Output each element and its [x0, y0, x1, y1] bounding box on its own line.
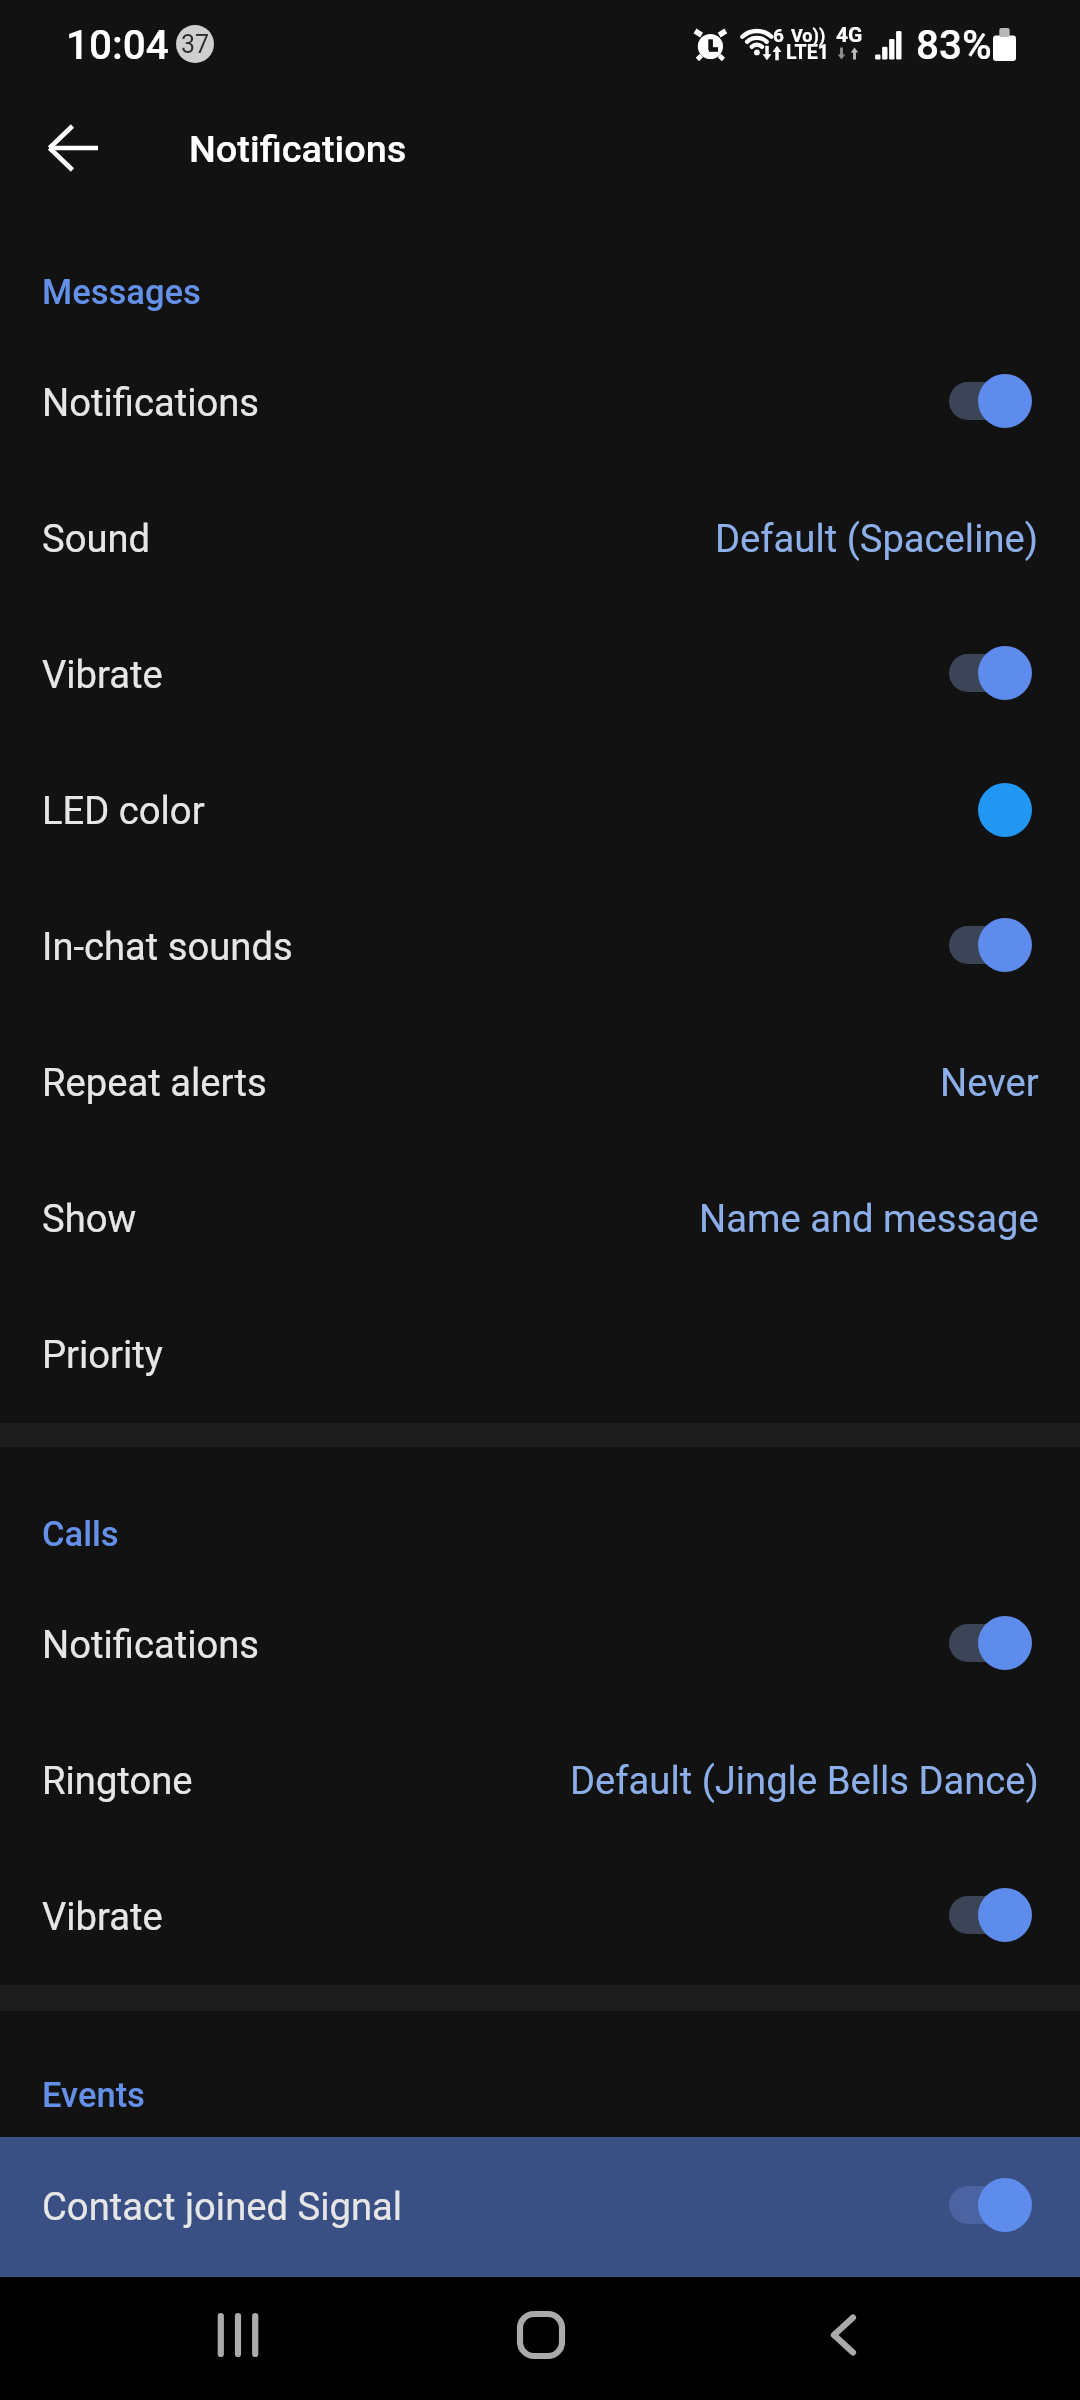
button[interactable]: Vibrate: [0, 1849, 1080, 1985]
staticText: Vibrate: [42, 653, 163, 698]
staticText: Ringtone: [42, 1759, 193, 1804]
staticText: Notifications: [189, 127, 407, 171]
button[interactable]: In-chat sounds: [0, 879, 1080, 1015]
staticText: Notifications: [42, 1623, 260, 1668]
staticText: Notifications: [42, 381, 260, 426]
button[interactable]: Contact joined Signal: [0, 2137, 1080, 2277]
staticText: LTE1: [786, 41, 829, 64]
staticText: Contact joined Signal: [42, 2185, 403, 2230]
staticText: Vibrate: [42, 1895, 163, 1940]
staticText: LED color: [42, 789, 205, 834]
button[interactable]: Vibrate: [0, 607, 1080, 743]
staticText: Priority: [42, 1333, 163, 1378]
staticText: Default (Spaceline): [715, 517, 1039, 562]
button[interactable]: Notifications: [0, 335, 1080, 471]
button[interactable]: Notifications: [0, 1577, 1080, 1713]
button[interactable]: Home: [481, 2273, 601, 2396]
staticText: 6: [773, 24, 784, 46]
staticText: In-chat sounds: [42, 925, 293, 970]
button[interactable]: LED color: [0, 743, 1080, 879]
staticText: Messages: [42, 272, 201, 312]
button[interactable]: Back: [29, 104, 117, 192]
staticText: Default (Jingle Bells Dance): [570, 1759, 1039, 1804]
staticText: Repeat alerts: [42, 1061, 267, 1106]
staticText: Vo)): [791, 25, 826, 46]
staticText: Calls: [42, 1514, 119, 1554]
staticText: Name and message: [699, 1197, 1039, 1242]
staticText: 10:04: [66, 21, 169, 68]
staticText: 83%: [916, 21, 992, 68]
button[interactable]: Sound: [0, 471, 1080, 607]
staticText: Never: [940, 1061, 1039, 1106]
button[interactable]: Back: [784, 2273, 904, 2396]
staticText: Events: [42, 2075, 145, 2115]
button[interactable]: Priority: [0, 1287, 1080, 1423]
staticText: Sound: [42, 517, 151, 562]
button[interactable]: Ringtone: [0, 1713, 1080, 1849]
button[interactable]: Repeat alerts: [0, 1015, 1080, 1151]
staticText: 4G: [836, 23, 863, 48]
button[interactable]: Recent apps: [178, 2273, 298, 2396]
staticText: 37: [181, 30, 210, 59]
staticText: Show: [42, 1197, 137, 1242]
button[interactable]: Show: [0, 1151, 1080, 1287]
